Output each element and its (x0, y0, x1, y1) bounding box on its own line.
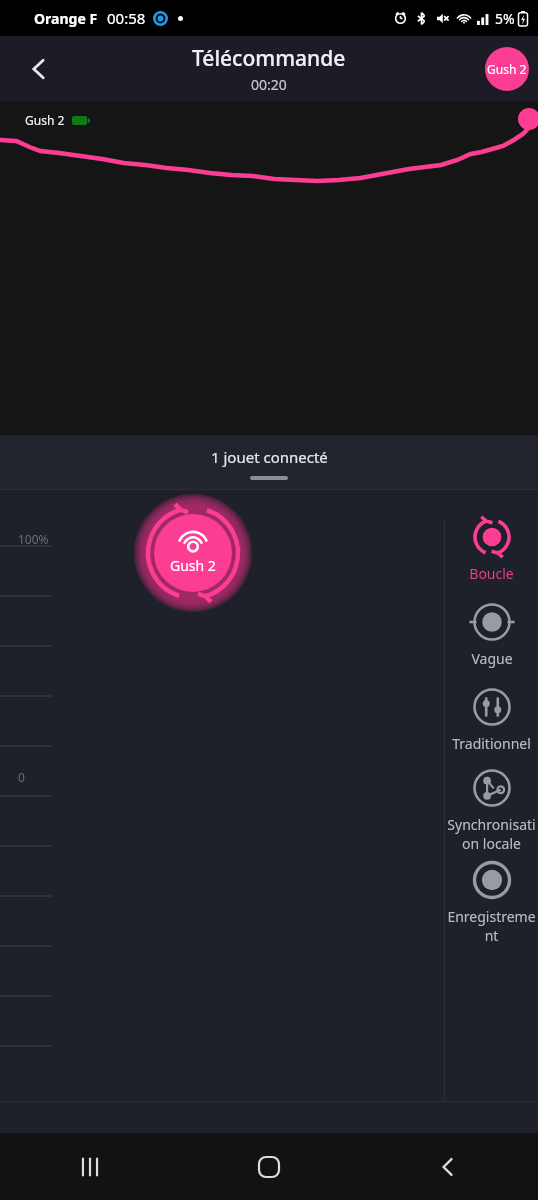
staticText: 0 (18, 769, 25, 785)
button[interactable]: Recents (61, 1138, 119, 1196)
button[interactable]: Drag handle (250, 476, 288, 480)
button[interactable]: Home (240, 1138, 298, 1196)
staticText: 00:20 (251, 75, 287, 94)
button[interactable]: Traditionnel (445, 682, 538, 753)
button[interactable]: Gush 2 (143, 503, 243, 603)
staticText: Traditionnel (452, 734, 531, 753)
staticText: Gush 2 (25, 112, 65, 128)
staticText: Orange F (34, 9, 98, 28)
staticText: 1 jouet connecté (211, 447, 328, 467)
staticText: 00:58 (107, 8, 146, 28)
button[interactable]: Enregistrement (445, 855, 538, 945)
staticText: Télécommande (192, 44, 346, 73)
button[interactable]: Back (16, 46, 62, 92)
staticText: Vague (471, 649, 513, 668)
staticText: Boucle (469, 564, 514, 583)
staticText: 5% (495, 9, 515, 28)
button[interactable]: Synchronisation locale (445, 763, 538, 853)
button[interactable]: Back (419, 1138, 477, 1196)
staticText: Gush 2 (487, 61, 527, 77)
staticText: 100% (18, 531, 49, 547)
button[interactable]: Boucle (445, 512, 538, 583)
button[interactable]: Gush 2 (485, 47, 529, 91)
staticText: Synchronisation locale (445, 815, 538, 853)
staticText: Gush 2 (170, 556, 216, 575)
button[interactable]: Vague (445, 597, 538, 668)
staticText: Enregistrement (445, 907, 538, 945)
